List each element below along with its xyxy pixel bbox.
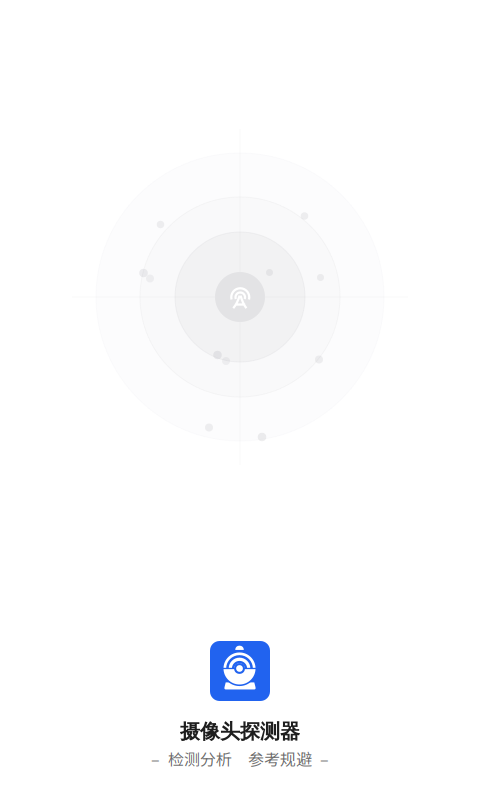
staticText: – 检测分析 参考规避 – [151,747,329,770]
button[interactable]: 开始探测 [215,272,265,322]
staticText: 摄像头探测器 [180,719,300,744]
